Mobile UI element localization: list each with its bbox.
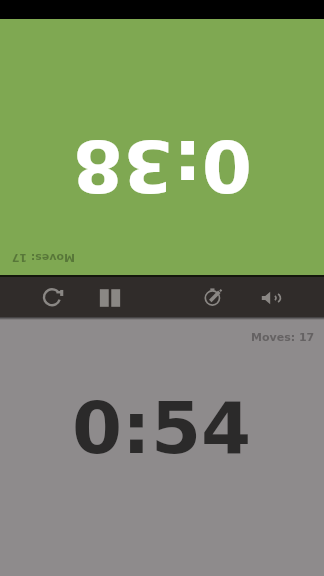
button[interactable]: Pause [89,275,131,317]
button[interactable]: Set time [193,275,235,317]
staticText: 0:38 [72,124,252,208]
staticText: Moves: 17 [11,251,75,264]
button[interactable]: Reset [32,275,74,317]
button[interactable]: Sound [250,275,292,317]
staticText: Moves: 17 [251,331,315,344]
staticText: 0:54 [72,386,252,470]
button[interactable]: Moves: 17 [0,317,324,576]
button[interactable]: Moves: 17 [0,19,324,275]
